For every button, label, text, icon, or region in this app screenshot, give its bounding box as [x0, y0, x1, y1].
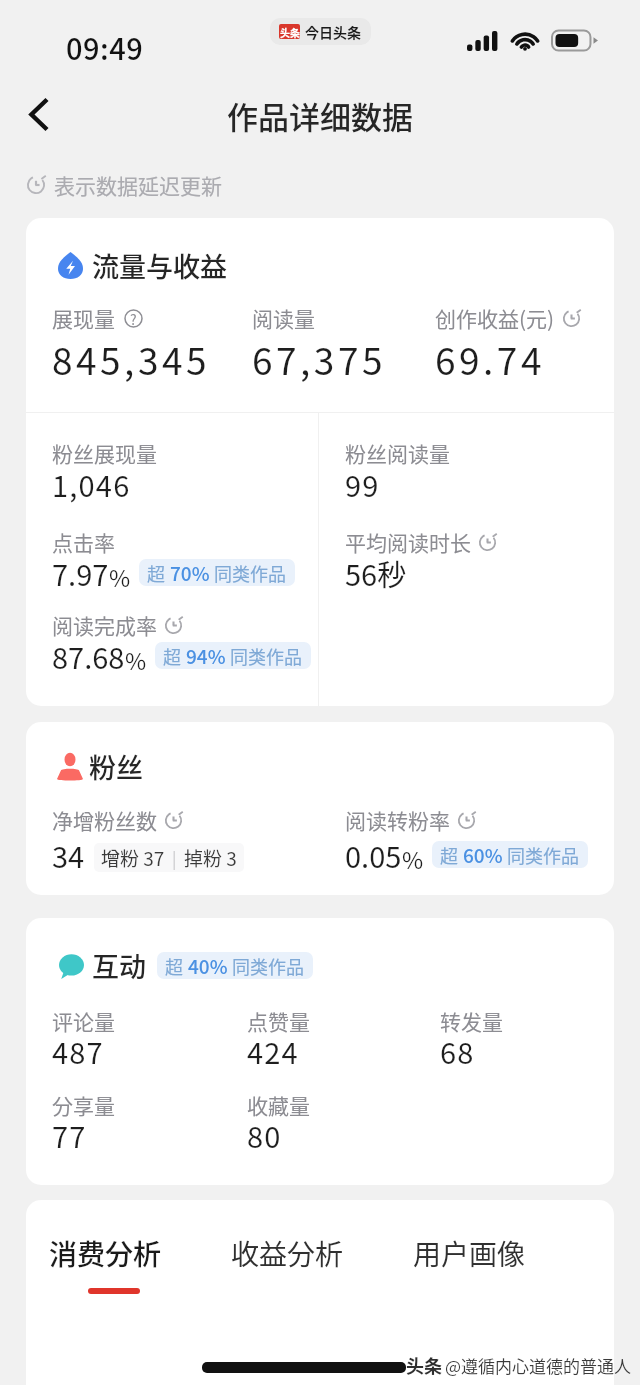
staticText: 增粉 37	[101, 844, 165, 872]
staticText: 表示数据延迟更新	[54, 170, 222, 200]
staticText: 转发量	[440, 1006, 503, 1036]
staticText: 70%	[170, 559, 210, 586]
staticText: 创作收益(元)	[435, 303, 555, 333]
staticText: 0.05	[345, 834, 402, 876]
staticText: 845,345	[52, 332, 210, 386]
staticText: 67,375	[252, 332, 386, 386]
staticText: 阅读转粉率	[345, 805, 450, 835]
staticText: 424	[247, 1030, 299, 1072]
staticText: 超	[165, 953, 188, 979]
staticText: 80	[247, 1114, 282, 1156]
staticText: 超	[147, 560, 170, 586]
staticText: 阅读量	[252, 303, 315, 333]
staticText: 同类作品	[226, 643, 303, 669]
staticText: 分享量	[52, 1090, 115, 1120]
staticText: 流量与收益	[92, 246, 227, 285]
staticText: 净增粉丝数	[52, 805, 157, 835]
staticText: 40%	[188, 952, 228, 979]
staticText: 56秒	[345, 552, 407, 594]
staticText: 同类作品	[210, 560, 287, 586]
staticText: 487	[52, 1030, 104, 1072]
staticText: 60%	[463, 841, 503, 868]
staticText: 34	[52, 834, 85, 876]
staticText: 头条	[280, 25, 300, 39]
staticText: 87.68	[52, 635, 125, 677]
button[interactable]: Back	[14, 89, 64, 139]
staticText: 平均阅读时长	[345, 527, 471, 557]
staticText: 用户画像	[413, 1233, 526, 1274]
staticText: 68	[440, 1030, 475, 1072]
staticText: 评论量	[52, 1006, 115, 1036]
staticText: 09:49	[66, 26, 144, 68]
staticText: 77	[52, 1114, 87, 1156]
staticText: 头条	[406, 1352, 442, 1378]
staticText: |	[172, 845, 177, 870]
staticText: 消费分析	[49, 1233, 162, 1274]
staticText: 粉丝阅读量	[345, 438, 450, 468]
staticText: %	[125, 643, 147, 676]
staticText: 作品详细数据	[227, 93, 413, 138]
staticText: 同类作品	[228, 953, 305, 979]
staticText: %	[402, 842, 424, 875]
staticText: 点赞量	[247, 1006, 310, 1036]
staticText: 粉丝展现量	[52, 438, 157, 468]
staticText: 69.74	[435, 332, 545, 386]
button[interactable]: 收益分析	[213, 1223, 362, 1284]
staticText: 展现量	[52, 303, 115, 333]
staticText: 掉粉 3	[184, 844, 237, 872]
staticText: 超	[163, 643, 186, 669]
staticText: %	[109, 560, 131, 593]
staticText: 点击率	[52, 527, 115, 557]
button[interactable]: 用户画像	[395, 1223, 544, 1284]
staticText: 粉丝	[89, 747, 143, 786]
staticText: 同类作品	[503, 842, 580, 868]
staticText: 收益分析	[231, 1233, 344, 1274]
staticText: 1,046	[52, 463, 131, 505]
staticText: 阅读完成率	[52, 610, 157, 640]
staticText: 7.97	[52, 552, 109, 594]
staticText: 99	[345, 463, 380, 505]
staticText: 今日头条	[305, 22, 361, 42]
staticText: 收藏量	[247, 1090, 310, 1120]
staticText: @遵循内心道德的普通人	[445, 1353, 632, 1378]
staticText: 超	[440, 842, 463, 868]
button[interactable]: 消费分析	[31, 1223, 180, 1304]
staticText: 互动	[92, 946, 146, 985]
staticText: 94%	[186, 642, 226, 669]
staticText: ?	[130, 309, 137, 328]
